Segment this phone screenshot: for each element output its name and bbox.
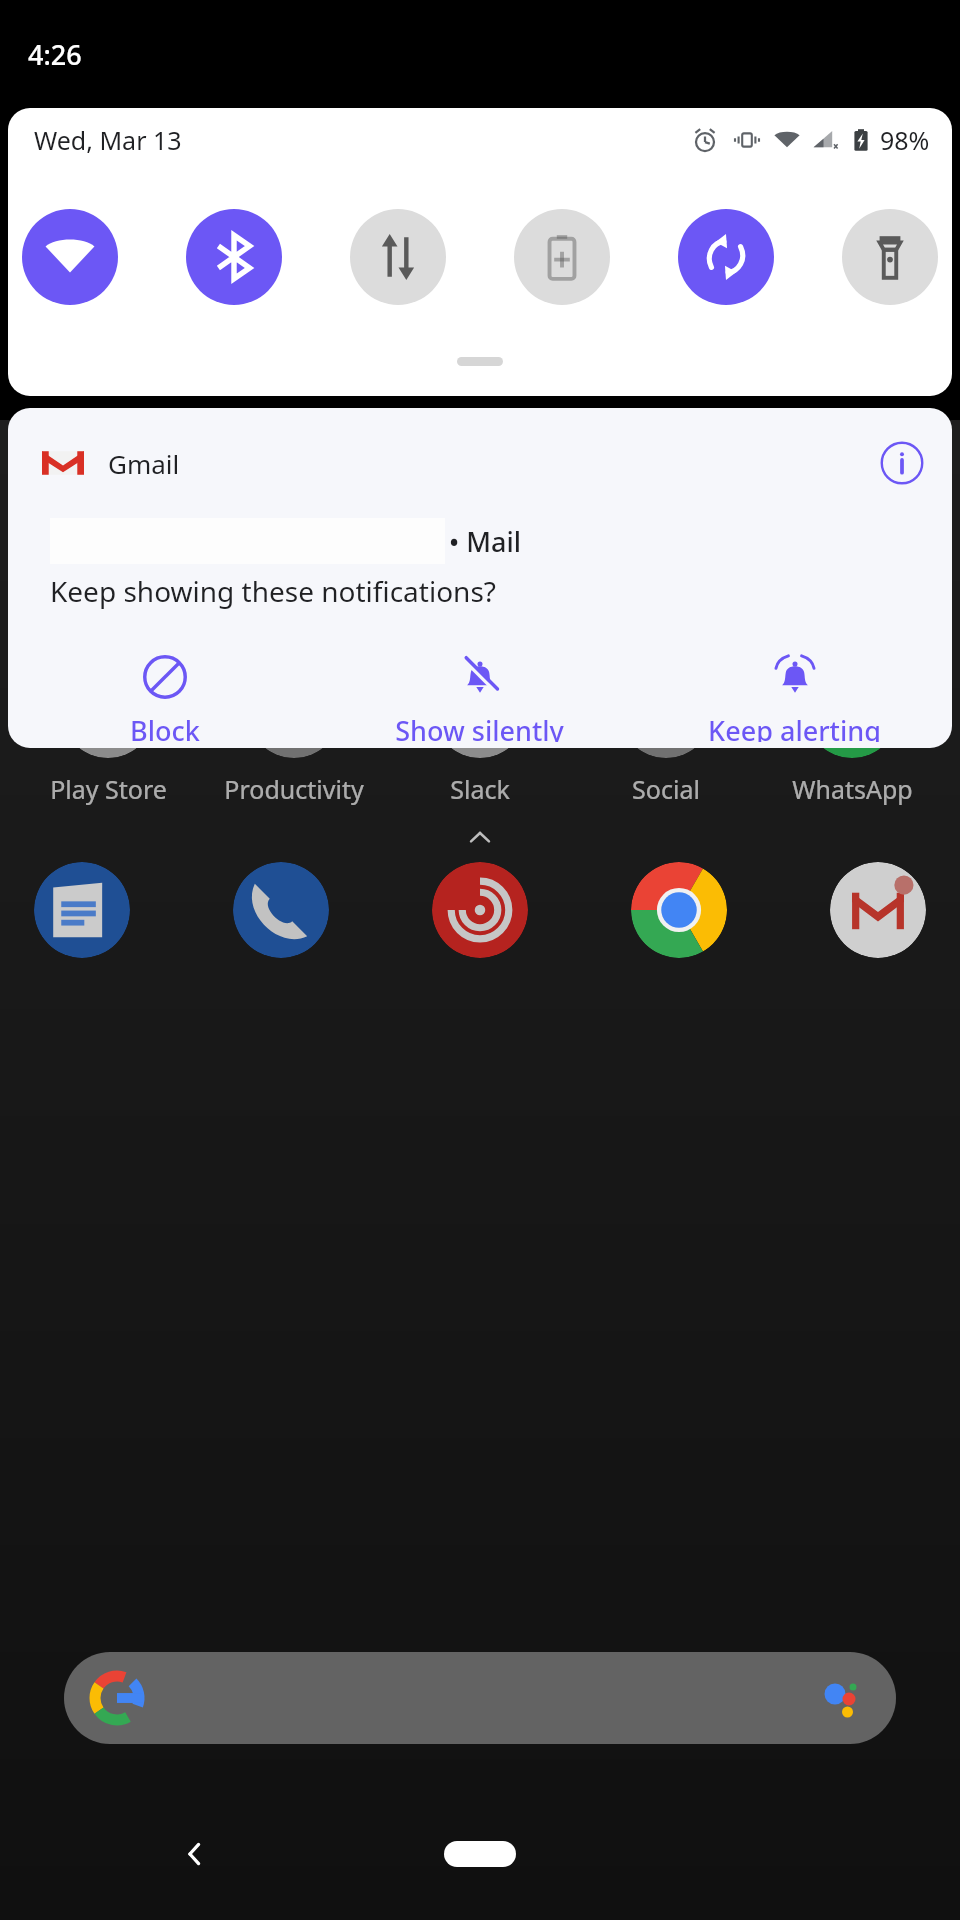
button[interactable]: Slack: [400, 664, 560, 806]
button[interactable]: Clear all: [806, 442, 914, 480]
button[interactable]: Phone: [233, 862, 329, 958]
button[interactable]: Play Store: [28, 664, 188, 806]
button[interactable]: AA: [28, 488, 188, 630]
button[interactable]: Auto rotate: [678, 209, 774, 305]
button[interactable]: Block: [8, 648, 322, 748]
button[interactable]: Notification info: [878, 439, 926, 487]
button[interactable]: Chrome: [631, 862, 727, 958]
staticText: Block: [130, 712, 200, 742]
button[interactable]: Flashlight: [842, 209, 938, 305]
staticText: Slack: [450, 772, 510, 806]
button[interactable]: Pocket Casts: [432, 862, 528, 958]
staticText: Clear all: [806, 442, 914, 480]
button[interactable]: Social: [586, 664, 746, 806]
staticText: 4:26: [28, 36, 82, 73]
staticText: Productivity: [224, 772, 364, 806]
staticText: AA: [92, 596, 124, 630]
staticText: Show silently: [395, 712, 564, 742]
button[interactable]: Google Search: [64, 1652, 896, 1744]
button[interactable]: Games: [214, 488, 374, 630]
button[interactable]: Show silently: [322, 648, 637, 748]
staticText: • Mail: [449, 523, 521, 560]
staticText: Keep showing these notifications?: [50, 572, 496, 610]
button[interactable]: Productivity: [214, 664, 374, 806]
staticText: Wed, Mar 13: [34, 123, 182, 157]
button[interactable]: Manage: [46, 442, 155, 480]
button[interactable]: Keep alerting: [637, 648, 952, 748]
button[interactable]: WhatsApp: [772, 664, 932, 806]
staticText: Social: [632, 772, 700, 806]
staticText: Multimedia: [413, 596, 547, 630]
button[interactable]: Bluetooth: [186, 209, 282, 305]
button[interactable]: Mobile data: [350, 209, 446, 305]
button[interactable]: Wi-Fi: [22, 209, 118, 305]
button[interactable]: Multimedia: [400, 488, 560, 630]
button[interactable]: Gmail: [830, 862, 926, 958]
button[interactable]: Battery saver: [514, 209, 610, 305]
staticText: Keep alerting: [708, 712, 881, 742]
staticText: Gmail: [108, 446, 180, 481]
staticText: Games: [253, 596, 335, 630]
staticText: Play Store: [50, 772, 167, 806]
button[interactable]: Messages: [34, 862, 130, 958]
button[interactable]: Home: [425, 1824, 535, 1884]
staticText: WhatsApp: [792, 772, 913, 806]
staticText: Manage: [46, 442, 155, 480]
button[interactable]: Back: [160, 1819, 230, 1889]
staticText: 98%: [880, 123, 930, 157]
